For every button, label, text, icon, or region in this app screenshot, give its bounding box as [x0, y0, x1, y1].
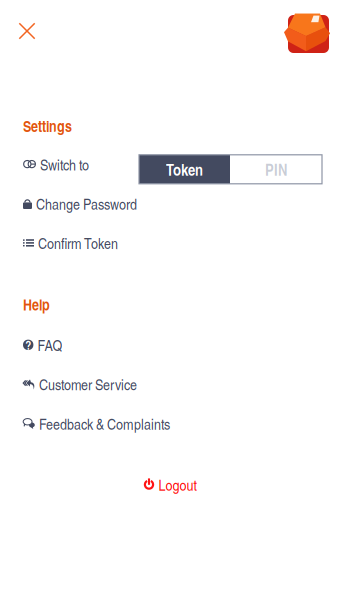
staticText: Switch to — [40, 154, 89, 175]
button[interactable]: Switch to — [0, 145, 340, 184]
staticText: ? — [25, 336, 31, 353]
staticText: Feedback & Complaints — [39, 413, 170, 434]
button[interactable]: Confirm Token — [0, 223, 340, 263]
staticText: FAQ — [37, 334, 62, 355]
button[interactable]: Token — [139, 155, 230, 184]
staticText: Help — [23, 294, 50, 315]
button[interactable]: PIN — [230, 155, 322, 184]
staticText: Logout — [158, 474, 196, 495]
staticText: Change Password — [36, 193, 137, 214]
button[interactable]: App logo — [284, 8, 330, 54]
button[interactable]: Change Password — [0, 184, 340, 223]
button[interactable]: ? — [0, 325, 340, 364]
staticText: Token — [166, 158, 203, 181]
button[interactable]: Close — [9, 13, 45, 48]
button[interactable]: Feedback & Complaints — [0, 404, 340, 443]
staticText: Confirm Token — [38, 232, 118, 253]
button[interactable]: Logout — [132, 467, 208, 502]
button[interactable]: Customer Service — [0, 364, 340, 404]
staticText: Settings — [23, 115, 72, 137]
staticText: PIN — [265, 158, 287, 181]
staticText: Customer Service — [39, 374, 137, 395]
